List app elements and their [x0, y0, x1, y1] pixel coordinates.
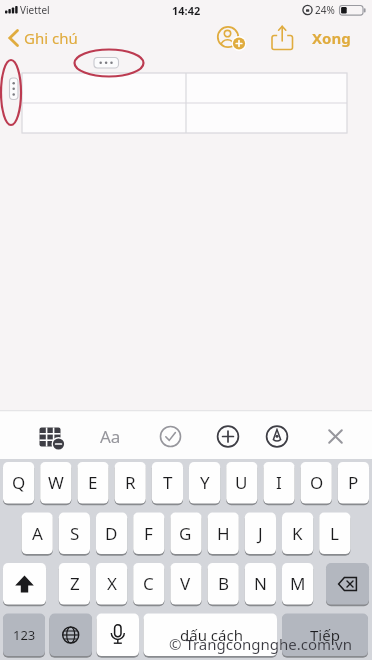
button[interactable] [261, 420, 293, 452]
button[interactable]: dấu cách [144, 614, 278, 656]
button[interactable]: X [96, 563, 127, 604]
button[interactable]: J [245, 513, 276, 554]
button[interactable]: B [208, 563, 239, 604]
button[interactable] [97, 614, 140, 657]
staticText: D [105, 522, 118, 545]
button[interactable]: U [226, 462, 257, 503]
button[interactable]: Aa [96, 424, 124, 448]
staticText: © Trangcongnghe.com.vn [169, 634, 353, 654]
button[interactable]: N [245, 563, 276, 604]
staticText: Xong [312, 28, 351, 48]
staticText: 14:42 [172, 3, 201, 18]
button[interactable]: V [170, 563, 201, 604]
staticText: Viettel [20, 3, 50, 17]
staticText: X [107, 572, 117, 595]
staticText: M [290, 572, 306, 595]
button[interactable]: O [301, 462, 332, 503]
staticText: C [143, 572, 154, 595]
button[interactable]: K [282, 513, 313, 554]
staticText: Z [70, 572, 80, 595]
button[interactable]: Tiếp [282, 614, 368, 656]
button[interactable]: I [263, 462, 294, 503]
staticText: Q [12, 471, 26, 494]
staticText: Y [200, 471, 210, 494]
button[interactable] [3, 563, 46, 605]
button[interactable]: T [152, 462, 183, 503]
button[interactable] [212, 24, 246, 52]
button[interactable]: C [133, 563, 164, 604]
button[interactable]: F [133, 513, 164, 554]
button[interactable]: D [96, 513, 127, 554]
staticText: Ghi chú [24, 28, 78, 48]
staticText: P [348, 471, 359, 494]
staticText: O [310, 471, 324, 494]
button[interactable]: 123 [3, 614, 45, 656]
staticText: F [144, 522, 153, 545]
button[interactable]: R [115, 462, 146, 503]
staticText: V [180, 572, 191, 595]
staticText: A [32, 522, 43, 545]
staticText: 123 [13, 626, 36, 644]
staticText: R [125, 471, 136, 494]
staticText: L [330, 522, 339, 545]
staticText: G [179, 522, 192, 545]
button[interactable]: Y [189, 462, 220, 503]
staticText: S [70, 522, 80, 545]
button[interactable]: P [338, 462, 369, 503]
button[interactable]: A [22, 513, 53, 554]
staticText: B [218, 572, 230, 595]
button[interactable] [212, 420, 244, 452]
button[interactable] [155, 420, 187, 452]
button[interactable]: S [59, 513, 90, 554]
button[interactable] [266, 24, 298, 52]
staticText: Aa [100, 425, 121, 448]
staticText: Tiếp [310, 625, 340, 645]
staticText: I [276, 471, 282, 494]
button[interactable] [320, 420, 352, 452]
button[interactable]: G [170, 513, 201, 554]
staticText: W [48, 471, 64, 494]
button[interactable] [326, 563, 369, 605]
button[interactable]: L [319, 513, 350, 554]
button[interactable] [50, 614, 93, 657]
staticText: 24% [315, 3, 335, 17]
staticText: N [254, 572, 267, 595]
staticText: H [217, 522, 230, 545]
button[interactable]: W [40, 462, 71, 503]
staticText: K [292, 522, 303, 545]
button[interactable]: H [208, 513, 239, 554]
button[interactable]: Xong [304, 27, 358, 49]
button[interactable]: Ghi chú [24, 28, 84, 48]
staticText: J [258, 522, 263, 545]
staticText: T [163, 471, 173, 494]
button[interactable]: Q [3, 462, 34, 503]
staticText: U [235, 471, 248, 494]
staticText: E [88, 471, 98, 494]
button[interactable] [34, 420, 66, 452]
button[interactable]: M [282, 563, 313, 604]
staticText: dấu cách [180, 625, 243, 645]
button[interactable]: Z [59, 563, 90, 604]
button[interactable]: E [77, 462, 108, 503]
